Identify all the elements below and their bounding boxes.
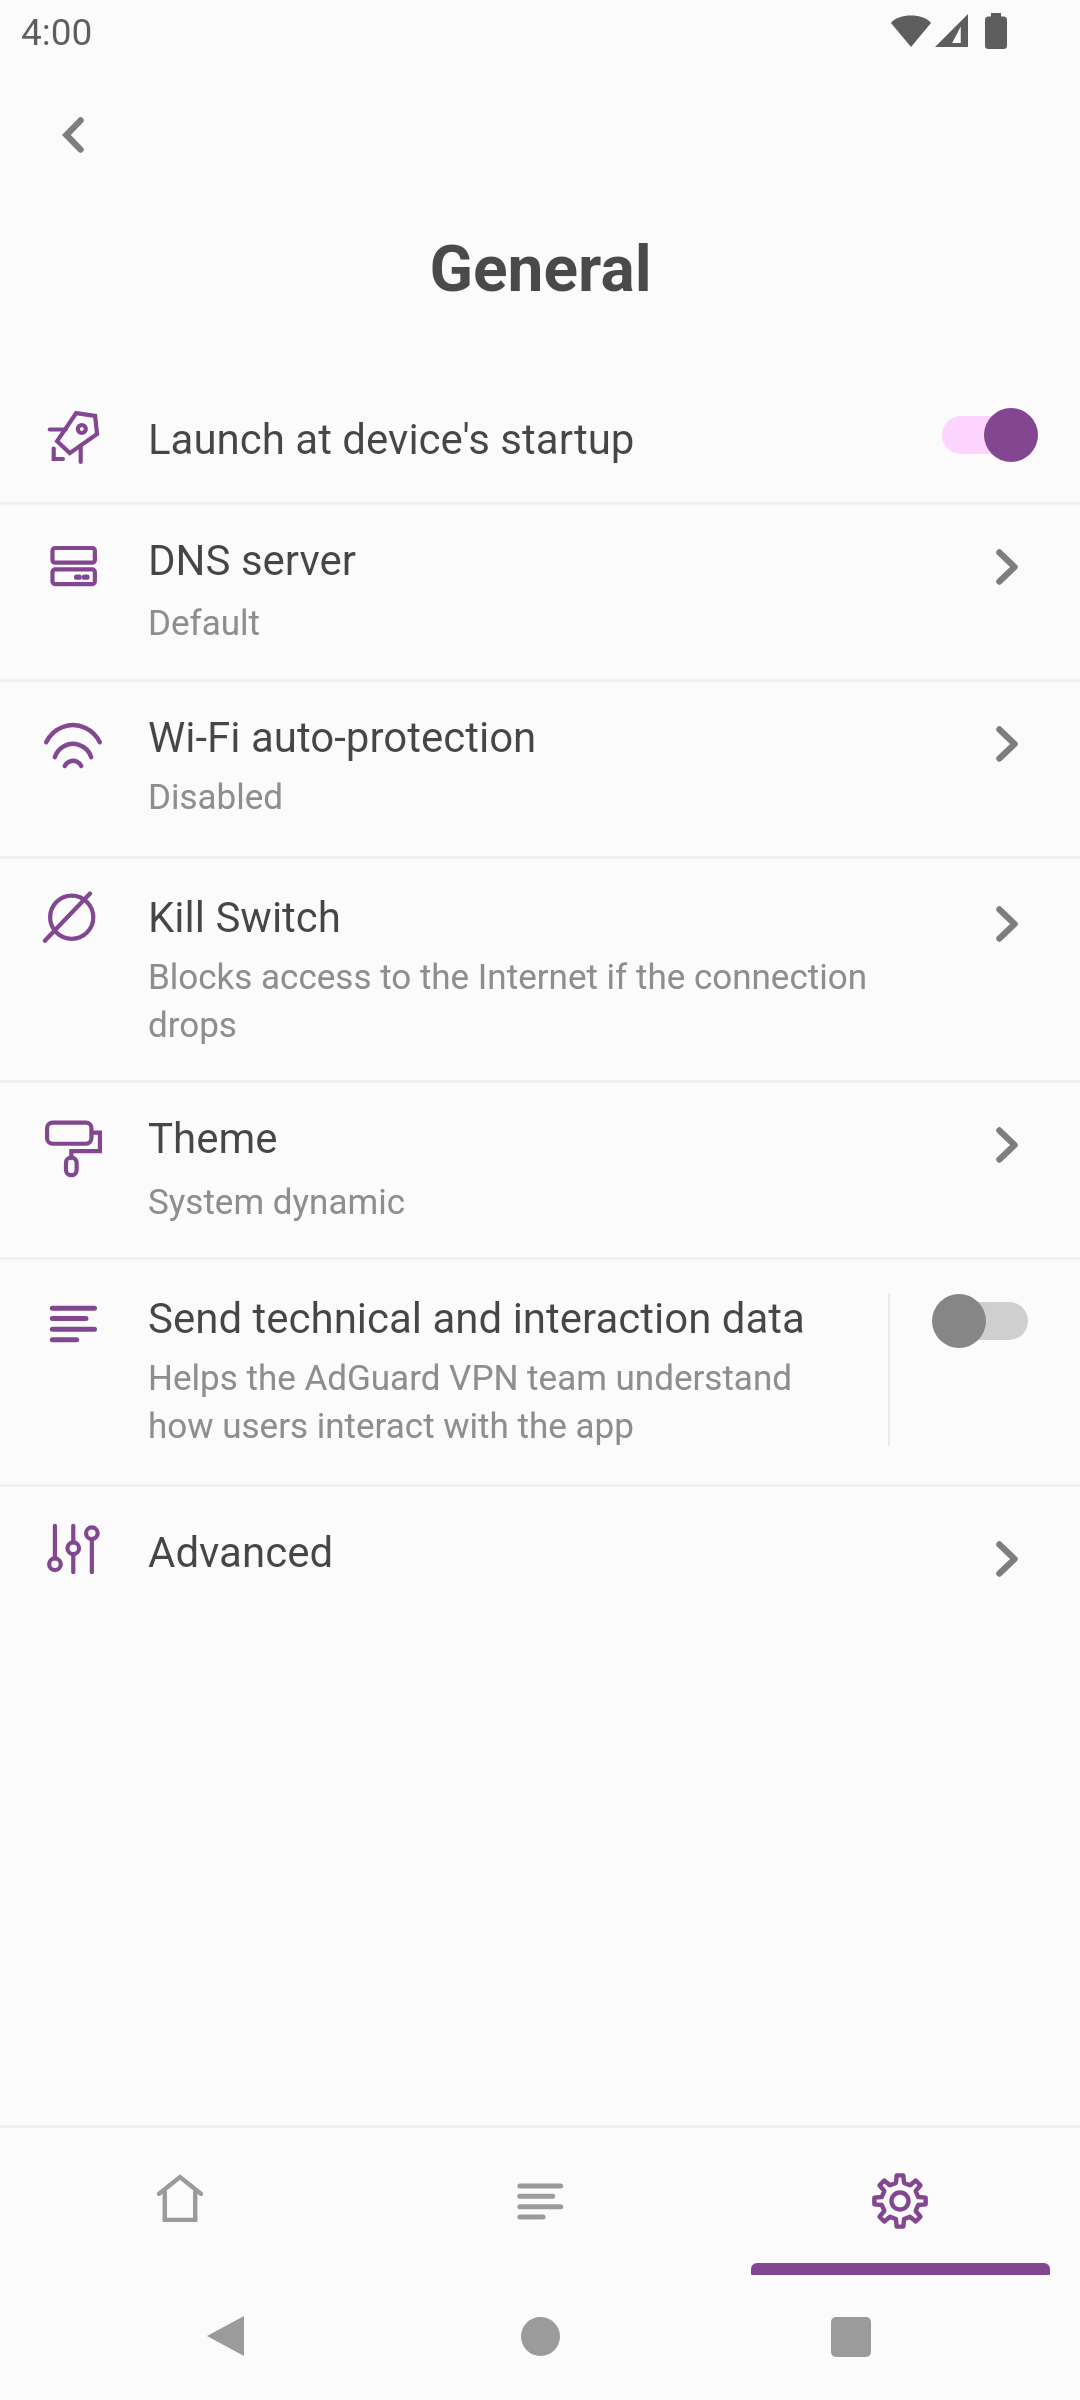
other: Recents xyxy=(831,2317,871,2357)
staticText: 4:00 xyxy=(21,11,93,54)
staticText: Default xyxy=(148,603,260,644)
staticText: Theme xyxy=(148,1114,278,1163)
staticText: Send technical and interaction data xyxy=(148,1294,805,1343)
button[interactable]: DNS server xyxy=(0,505,1080,679)
other: Home xyxy=(521,2317,560,2356)
button[interactable]: Send technical and interaction data xyxy=(0,1260,1080,1484)
staticText: Kill Switch xyxy=(148,893,341,942)
button[interactable]: Exclusions xyxy=(360,2125,720,2270)
staticText: DNS server xyxy=(148,536,357,585)
button[interactable]: Theme xyxy=(0,1083,1080,1257)
button[interactable]: Advanced xyxy=(0,1487,1080,1612)
staticText: Disabled xyxy=(148,777,284,818)
button[interactable]: Back xyxy=(28,90,118,180)
button[interactable]: Kill Switch xyxy=(0,859,1080,1080)
staticText: General xyxy=(429,232,652,307)
button[interactable]: Send technical and interaction data, off xyxy=(932,1294,1028,1348)
staticText: Wi-Fi auto-protection xyxy=(148,713,537,762)
button[interactable]: Settings xyxy=(720,2125,1080,2270)
staticText: Blocks access to the Internet if the con… xyxy=(148,957,893,1046)
other: Back xyxy=(206,2315,244,2357)
button[interactable]: Launch at device's startup xyxy=(0,371,1080,502)
staticText: Launch at device's startup xyxy=(148,415,635,464)
button[interactable]: Home xyxy=(0,2125,360,2270)
staticText: System dynamic xyxy=(148,1182,405,1223)
button[interactable]: Launch at device's startup, on xyxy=(942,408,1038,462)
button[interactable]: Wi-Fi auto-protection xyxy=(0,682,1080,856)
staticText: Advanced xyxy=(148,1528,334,1577)
staticText: Helps the AdGuard VPN team understand ho… xyxy=(148,1358,828,1447)
